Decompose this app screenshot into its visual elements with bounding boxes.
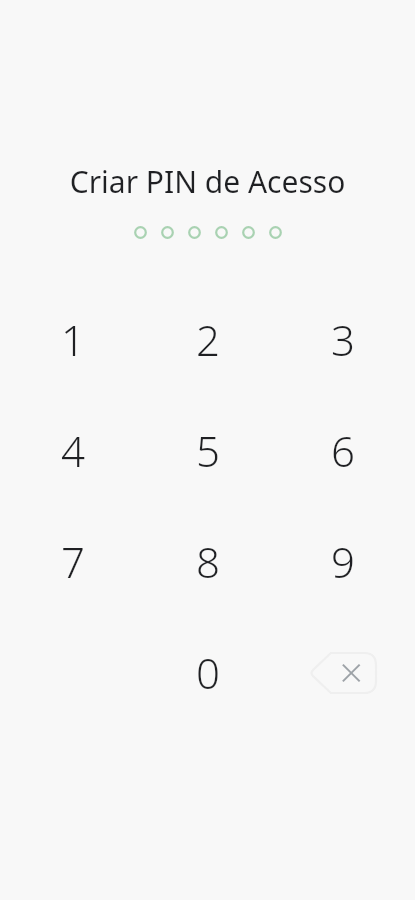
staticText: 4	[61, 422, 85, 479]
button[interactable]: 2	[145, 284, 270, 395]
staticText: 3	[331, 311, 355, 368]
staticText: 9	[331, 533, 355, 590]
button[interactable]: 3	[280, 284, 405, 395]
button[interactable]: 1	[10, 284, 135, 395]
button[interactable]: 7	[10, 506, 135, 617]
button[interactable]: Backspace	[280, 617, 405, 728]
staticText: 5	[196, 422, 220, 479]
button[interactable]: 4	[10, 395, 135, 506]
staticText: 2	[196, 311, 220, 368]
button[interactable]: 0	[145, 617, 270, 728]
button[interactable]: 6	[280, 395, 405, 506]
button[interactable]: 8	[145, 506, 270, 617]
staticText: Criar PIN de Acesso	[0, 161, 415, 202]
staticText: 0	[196, 644, 220, 701]
staticText: 7	[61, 533, 85, 590]
button[interactable]: 5	[145, 395, 270, 506]
staticText: 1	[61, 311, 85, 368]
button[interactable]: 9	[280, 506, 405, 617]
staticText: 8	[196, 533, 220, 590]
staticText: 6	[331, 422, 355, 479]
